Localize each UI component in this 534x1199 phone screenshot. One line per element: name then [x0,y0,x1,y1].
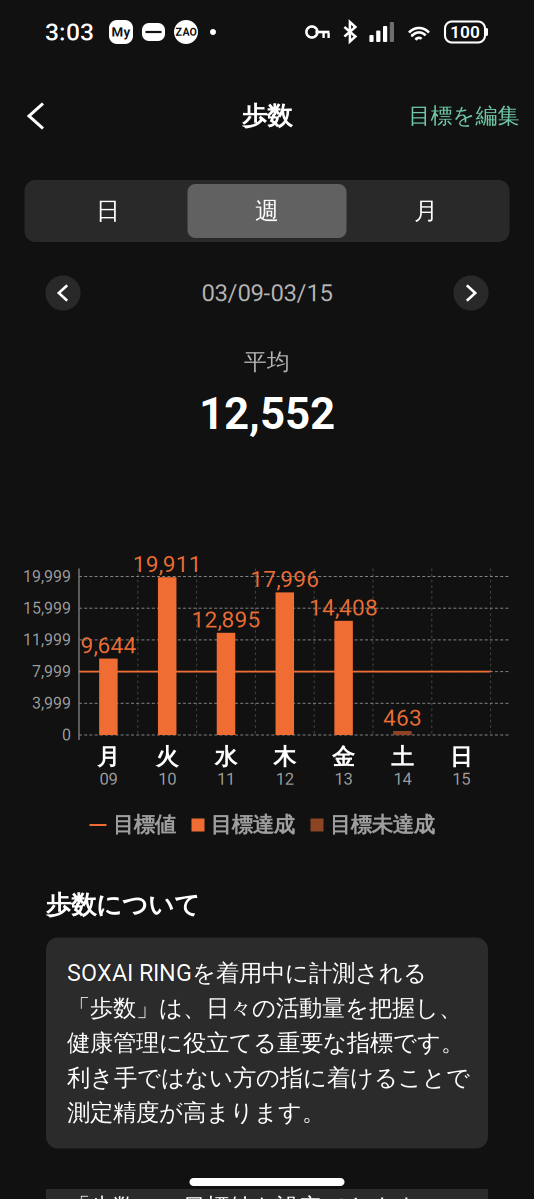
staticText: 歩数について [46,889,200,921]
button[interactable]: 次の週 [453,275,488,310]
staticText: 12,552 [199,388,335,440]
staticText: 目標未達成 [329,812,434,838]
staticText: 11,999 [23,630,71,649]
button[interactable]: 日 [28,184,187,238]
button[interactable]: 月 [346,184,505,238]
staticText: 3,999 [32,694,71,713]
staticText: 「歩数」は、日々の活動量を把握し、 [67,993,462,1023]
staticText: 利き手ではない方の指に着けることで [67,1063,470,1093]
staticText: 金 [332,743,355,771]
staticText: 目標を編集 [408,102,519,130]
staticText: 健康管理に役立てる重要な指標です。 [67,1028,464,1058]
staticText: 月 [97,743,120,771]
staticText: 歩数 [242,100,292,132]
staticText: 12 [276,769,294,789]
staticText: 日 [96,196,120,226]
staticText: 15 [452,769,470,789]
staticText: 13 [335,769,353,789]
staticText: 14 [393,769,411,789]
button[interactable]: 目標を編集 [398,90,529,142]
staticText: 14,408 [309,594,378,621]
staticText: 目標値 [112,812,175,838]
staticText: 平均 [244,348,290,376]
staticText: 測定精度が高まります。 [67,1098,325,1127]
staticText: 目標達成 [210,812,294,838]
staticText: 9,644 [80,632,136,659]
staticText: 12,895 [191,606,260,633]
staticText: 0 [62,726,71,744]
staticText: 木 [273,743,296,771]
staticText: 03/09-03/15 [201,279,332,307]
staticText: 09 [99,769,117,789]
staticText: 火 [156,743,179,771]
staticText: 水 [214,743,237,771]
staticText: 月 [414,196,438,226]
staticText: 7,999 [32,662,71,681]
staticText: 19,911 [133,551,202,577]
staticText: 「歩数」の目標値を設定できます [67,1192,418,1199]
staticText: 100 [450,22,480,42]
staticText: 3:03 [45,17,94,46]
staticText: 日 [450,743,473,771]
staticText: 463 [383,705,422,731]
staticText: 19,999 [23,567,71,586]
staticText: SOXAI RINGを着用中に計測される [67,958,427,988]
staticText: 土 [391,743,414,771]
staticText: 週 [255,196,279,226]
staticText: My [111,24,130,40]
staticText: 15,999 [23,599,71,618]
button[interactable]: 週 [187,184,346,238]
staticText: 11 [217,769,235,789]
staticText: 10 [158,769,176,789]
button[interactable]: 戻る [8,88,64,144]
staticText: ZAO [175,26,196,38]
staticText: 17,996 [250,566,319,593]
button[interactable]: 前の週 [45,275,80,310]
